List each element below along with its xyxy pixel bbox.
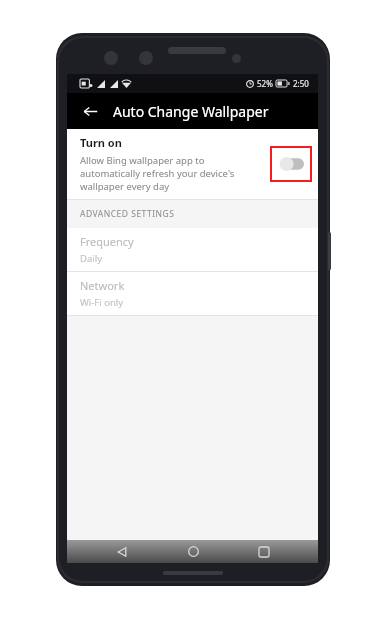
staticText: Allow Bing wallpaper app to automaticall… [80, 154, 256, 193]
staticText: Daily [80, 252, 103, 265]
button[interactable]: Turn on auto change wallpaper [270, 146, 312, 182]
button[interactable]: Back [75, 96, 105, 126]
staticText: ADVANCED SETTINGS [80, 208, 175, 220]
staticText: Auto Change Wallpaper [113, 102, 269, 121]
button[interactable]: Recent apps [247, 540, 281, 563]
button[interactable]: Turn on [67, 129, 318, 199]
staticText: 2:50 [293, 78, 309, 89]
staticText: Network [80, 278, 125, 293]
button[interactable]: Frequency [67, 228, 318, 271]
button[interactable]: Network [67, 272, 318, 315]
staticText: Turn on [80, 135, 122, 150]
staticText: Frequency [80, 234, 134, 249]
button[interactable]: Home [176, 540, 210, 563]
staticText: Wi-Fi only [80, 296, 124, 309]
staticText: 52% [257, 78, 273, 89]
button[interactable]: Back [105, 540, 139, 563]
